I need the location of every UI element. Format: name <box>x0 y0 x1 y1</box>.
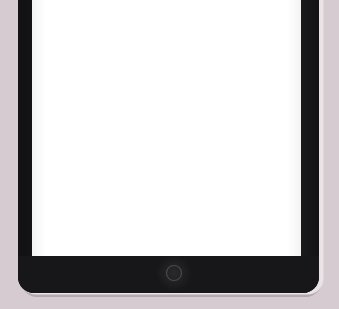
button[interactable]: Home <box>0 0 339 309</box>
